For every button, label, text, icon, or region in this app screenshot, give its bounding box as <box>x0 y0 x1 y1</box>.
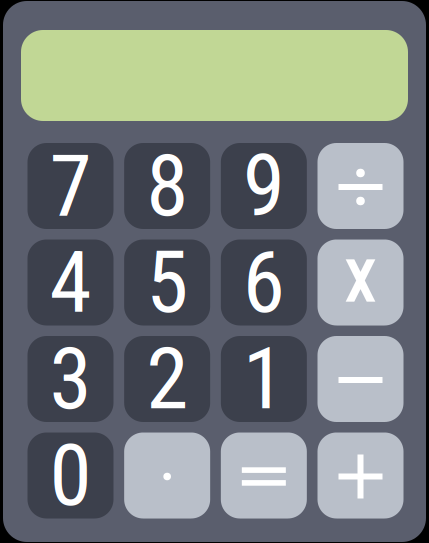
button[interactable]: 5 <box>124 239 210 325</box>
button[interactable]: Equals <box>221 432 307 518</box>
staticText: 2 <box>146 329 188 429</box>
staticText: 5 <box>146 232 188 332</box>
button[interactable]: Subtract <box>317 336 403 422</box>
staticText: 9 <box>243 136 285 236</box>
button[interactable]: Add <box>317 432 403 518</box>
staticText: 0 <box>49 425 91 525</box>
staticText: 8 <box>146 136 188 236</box>
staticText: 1 <box>243 329 285 429</box>
button[interactable]: 8 <box>124 143 210 229</box>
button[interactable]: 3 <box>27 336 113 422</box>
staticText: 4 <box>49 232 91 332</box>
button[interactable]: 2 <box>124 336 210 422</box>
button[interactable]: 6 <box>221 239 307 325</box>
button[interactable]: 1 <box>221 336 307 422</box>
button[interactable]: 4 <box>27 239 113 325</box>
staticText: 3 <box>49 329 91 429</box>
button[interactable]: 7 <box>27 143 113 229</box>
staticText: 6 <box>243 232 285 332</box>
button[interactable]: Multiply <box>317 239 403 325</box>
button[interactable]: 9 <box>221 143 307 229</box>
button[interactable]: Decimal point <box>124 432 210 518</box>
button[interactable]: 0 <box>27 432 113 518</box>
button[interactable]: Divide <box>317 143 403 229</box>
staticText: 7 <box>49 136 91 236</box>
